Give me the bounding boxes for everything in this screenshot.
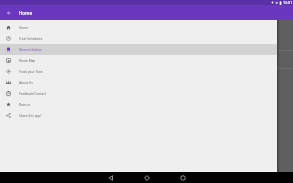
staticText: Feedback/Contact (19, 92, 46, 96)
button[interactable]: Nearest Station (0, 44, 277, 55)
button[interactable]: Rate us (0, 99, 277, 110)
button[interactable]: Home (0, 22, 277, 33)
button[interactable]: Train Schedules (0, 33, 277, 44)
staticText: Share this app! (19, 114, 42, 118)
button[interactable]: Feedback/Contact (0, 88, 277, 99)
button[interactable]: Track your Train (0, 66, 277, 77)
button[interactable]: About Us (0, 77, 277, 88)
staticText: Route Map (19, 59, 36, 63)
button[interactable]: Route Map (0, 55, 277, 66)
button[interactable]: Back (2, 6, 15, 19)
button[interactable]: Recent apps (177, 172, 188, 183)
staticText: Rate us (19, 103, 31, 107)
staticText: 12:01 (283, 0, 293, 5)
button[interactable]: Home (141, 172, 152, 183)
staticText: About Us (19, 81, 33, 85)
button[interactable]: Back (105, 172, 116, 183)
staticText: Train Schedules (19, 37, 43, 41)
staticText: Home (19, 26, 29, 30)
staticText: Home (19, 10, 32, 16)
staticText: Track your Train (19, 70, 43, 74)
button[interactable]: Share this app! (0, 110, 277, 121)
staticText: Nearest Station (19, 48, 43, 52)
